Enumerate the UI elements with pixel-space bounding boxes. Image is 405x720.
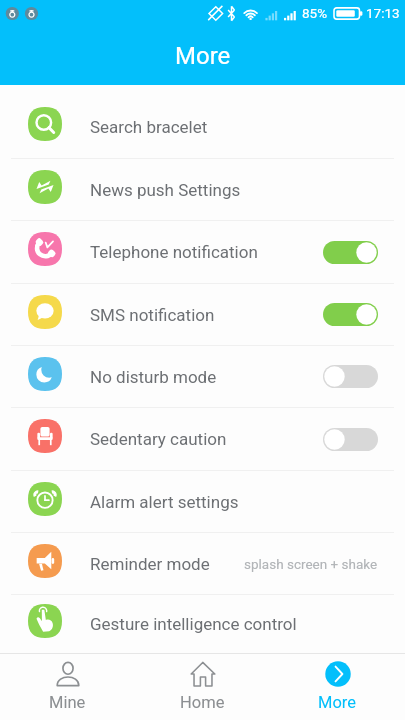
staticText: Telephone notification (90, 242, 258, 262)
staticText: No disturb mode (90, 367, 217, 387)
staticText: Search bracelet (90, 117, 208, 137)
staticText: 17:13 (366, 5, 400, 21)
staticText: splash screen + shake (244, 556, 378, 572)
staticText: More (175, 42, 231, 70)
staticText: More (318, 693, 357, 712)
staticText: Reminder mode (90, 554, 210, 574)
button[interactable]: Gesture intelligence control (0, 595, 405, 653)
staticText: 85% (302, 5, 328, 21)
staticText: Gesture intelligence control (90, 614, 297, 634)
button[interactable]: Alarm alert settings (0, 471, 405, 532)
button[interactable]: More (270, 654, 405, 720)
staticText: Sedentary caution (90, 429, 227, 449)
button[interactable]: Sedentary caution (0, 408, 405, 470)
button[interactable]: Switch on (323, 303, 378, 326)
button[interactable]: News push Settings (0, 159, 405, 220)
staticText: Home (180, 693, 225, 712)
button[interactable]: SMS notification (0, 284, 405, 345)
button[interactable]: Telephone notification (0, 221, 405, 283)
button[interactable]: Reminder mode (0, 533, 405, 594)
button[interactable]: No disturb mode (0, 346, 405, 407)
staticText: News push Settings (90, 180, 241, 200)
button[interactable]: Switch off (323, 428, 378, 451)
staticText: Mine (49, 693, 86, 712)
staticText: SMS notification (90, 305, 215, 325)
staticText: Alarm alert settings (90, 492, 239, 512)
button[interactable]: Switch on (323, 241, 378, 264)
button[interactable]: Mine (0, 654, 135, 720)
button[interactable]: Search bracelet (0, 96, 405, 158)
button[interactable]: Home (135, 654, 270, 720)
button[interactable]: Switch off (323, 365, 378, 388)
